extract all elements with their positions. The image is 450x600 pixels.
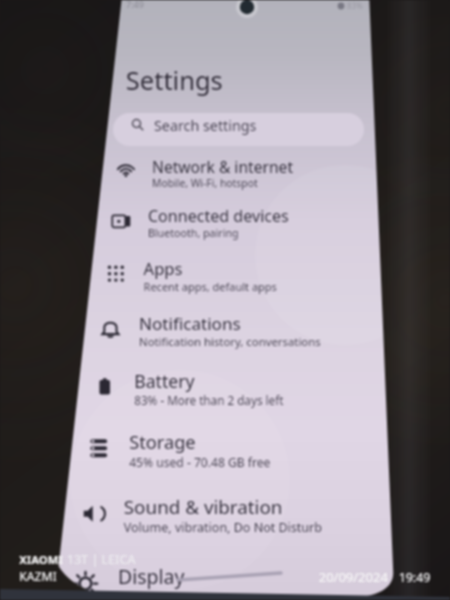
button[interactable]: Android Settings screen — [0, 0, 450, 600]
